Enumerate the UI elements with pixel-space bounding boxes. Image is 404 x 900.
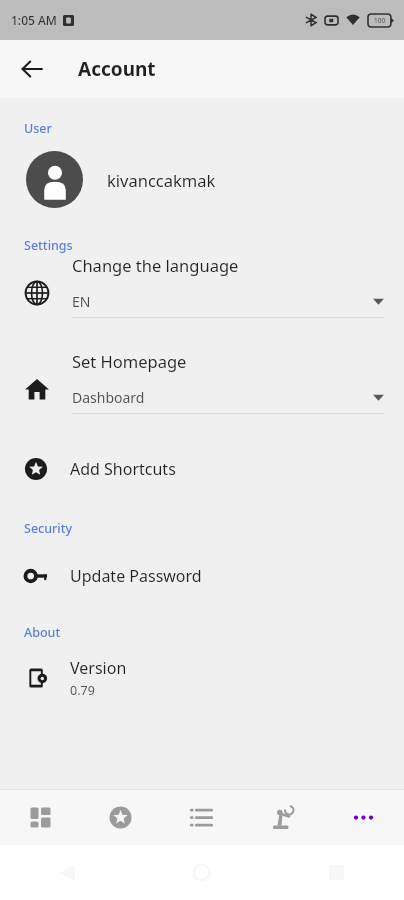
staticText: 1:05 AM <box>11 12 57 28</box>
button[interactable]: Dashboard <box>0 790 80 845</box>
button[interactable]: kivanccakmak <box>0 151 404 208</box>
button[interactable]: Favorites <box>80 790 161 845</box>
staticText: Account <box>78 56 156 82</box>
staticText: Security <box>24 520 73 537</box>
staticText: Settings <box>24 237 73 254</box>
button[interactable]: Change the language <box>0 254 404 318</box>
staticText: About <box>24 624 61 641</box>
staticText: Version <box>70 657 127 679</box>
staticText: Set Homepage <box>72 350 187 372</box>
button[interactable]: Set Homepage <box>0 350 404 414</box>
button[interactable]: Back <box>12 49 52 89</box>
button[interactable]: Machines <box>242 790 323 845</box>
staticText: User <box>24 120 52 137</box>
staticText: Add Shortcuts <box>70 458 176 480</box>
button[interactable]: List <box>161 790 242 845</box>
staticText: Change the language <box>72 254 239 276</box>
button[interactable]: Update Password <box>0 559 404 593</box>
staticText: EN <box>72 292 91 311</box>
button[interactable]: More options <box>323 790 404 845</box>
staticText: 0.79 <box>70 682 95 699</box>
staticText: Update Password <box>70 565 202 587</box>
staticText: Dashboard <box>72 388 145 407</box>
staticText: 100 <box>374 16 386 25</box>
button[interactable]: Add Shortcuts <box>0 450 404 488</box>
button[interactable]: Version <box>0 657 404 699</box>
staticText: kivanccakmak <box>107 169 216 191</box>
